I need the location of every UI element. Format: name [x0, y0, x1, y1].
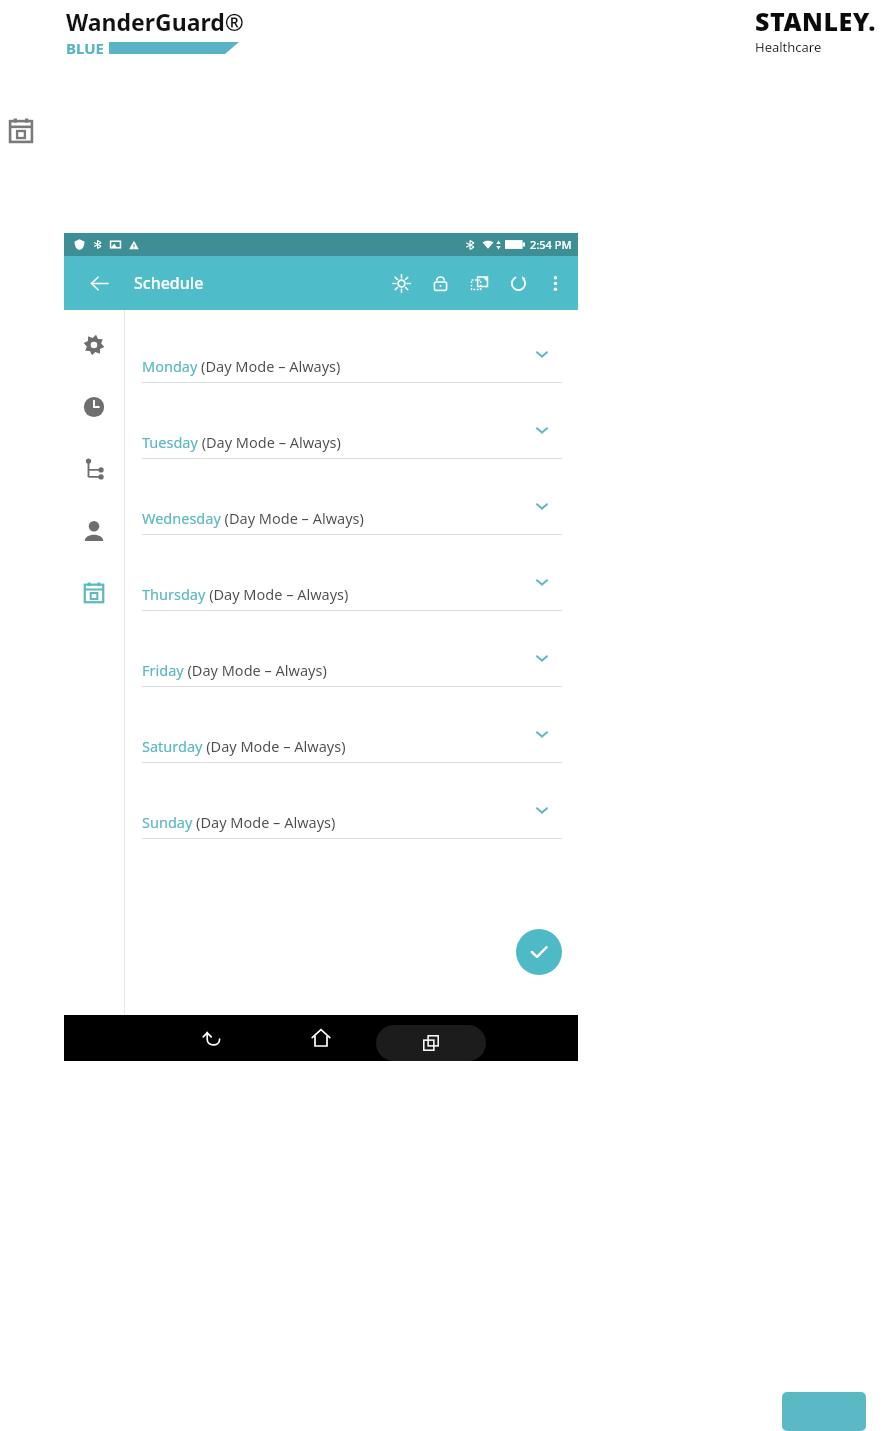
button[interactable]: Recents — [376, 1025, 486, 1061]
staticText: STANLEY. — [755, 4, 877, 38]
button[interactable]: Saturday (Day Mode – Always) — [125, 711, 578, 787]
button[interactable]: Back — [80, 264, 118, 302]
button[interactable]: Sunday (Day Mode – Always) — [125, 787, 578, 863]
staticText: 2:54 PM — [530, 237, 572, 252]
button[interactable]: More options — [540, 268, 570, 298]
button[interactable]: Thursday (Day Mode – Always) — [125, 559, 578, 635]
staticText: BLUE — [66, 38, 104, 58]
button[interactable] — [782, 1392, 866, 1431]
staticText: Saturday (Day Mode – Always) — [142, 736, 346, 756]
staticText: Thursday (Day Mode – Always) — [142, 584, 349, 604]
staticText: Monday (Day Mode – Always) — [142, 356, 341, 376]
staticText: Tuesday (Day Mode – Always) — [142, 432, 341, 452]
button[interactable]: Time — [72, 385, 116, 429]
button[interactable]: Back — [189, 1015, 235, 1061]
staticText: Wednesday (Day Mode – Always) — [142, 508, 364, 528]
button[interactable]: Home — [298, 1015, 344, 1061]
button[interactable]: Devices — [72, 447, 116, 491]
button[interactable]: Wednesday (Day Mode – Always) — [125, 483, 578, 559]
button[interactable]: Lock — [425, 268, 455, 298]
button[interactable]: Brightness — [386, 268, 416, 298]
staticText: Sunday (Day Mode – Always) — [142, 812, 336, 832]
button[interactable]: Settings — [72, 323, 116, 367]
button[interactable]: Save — [516, 929, 562, 975]
staticText: Friday (Day Mode – Always) — [142, 660, 327, 680]
button[interactable]: Friday (Day Mode – Always) — [125, 635, 578, 711]
button[interactable]: Residents — [72, 509, 116, 553]
button[interactable]: Refresh — [503, 268, 533, 298]
staticText: Schedule — [134, 272, 204, 294]
button[interactable]: Tuesday (Day Mode – Always) — [125, 407, 578, 483]
staticText: Healthcare — [755, 38, 822, 56]
staticText: WanderGuard® — [66, 6, 244, 37]
button[interactable]: Schedule — [72, 571, 116, 615]
button[interactable]: Copy — [464, 268, 494, 298]
button[interactable]: Monday (Day Mode – Always) — [125, 331, 578, 407]
